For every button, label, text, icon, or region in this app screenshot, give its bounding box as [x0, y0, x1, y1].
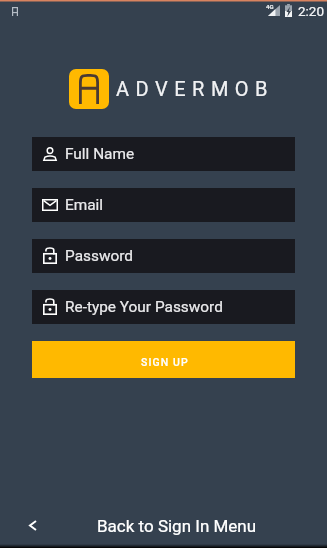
other: Back	[30, 521, 36, 530]
staticText: 2:20	[298, 3, 325, 19]
button[interactable]: SIGN UP	[32, 341, 295, 378]
button[interactable]: Re-type Your Password	[32, 290, 295, 324]
staticText: 4G	[266, 3, 274, 10]
staticText: Password	[65, 247, 133, 265]
staticText: SIGN UP	[141, 356, 189, 368]
button[interactable]: Email	[32, 188, 295, 222]
staticText: Re-type Your Password	[65, 298, 223, 316]
button[interactable]: Full Name	[32, 137, 295, 171]
staticText: Back to Sign In Menu	[97, 516, 257, 536]
staticText: Full Name	[65, 145, 135, 163]
button[interactable]: Password	[32, 239, 295, 273]
staticText: Email	[65, 196, 104, 214]
staticText: ADVERMOB	[116, 77, 275, 100]
button[interactable]: Back to Sign In Menu	[0, 500, 327, 548]
